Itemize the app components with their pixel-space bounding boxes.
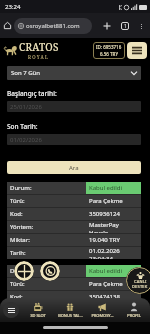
staticText: Türü:	[10, 280, 25, 288]
staticText: 350936124	[89, 210, 120, 218]
staticText: 01/02/2026	[10, 136, 42, 144]
button[interactable]: Miktar:	[7, 234, 141, 246]
button[interactable]: Add	[14, 261, 34, 281]
button[interactable]: 01/02/2026	[7, 134, 141, 145]
staticText: Başlangıç tarihi:	[7, 89, 57, 98]
button[interactable]: Türü:	[7, 195, 141, 207]
button[interactable]: Tarih:	[7, 247, 141, 259]
staticText: 350474138	[89, 293, 120, 301]
button[interactable]: BONUS TAL...	[54, 298, 86, 322]
staticText: Durum:	[10, 184, 32, 192]
staticText: Türü:	[10, 197, 25, 205]
staticText: Kod:	[10, 210, 23, 218]
button[interactable]: PROFIL	[118, 298, 150, 322]
staticText: Ara	[69, 164, 79, 172]
staticText: 6.56 TRY	[100, 51, 118, 57]
staticText: CANLI	[134, 279, 147, 284]
staticText: Miktar:	[10, 236, 30, 244]
staticText: 1	[124, 23, 127, 30]
button[interactable]: Home	[1, 19, 14, 32]
staticText: CRATOS	[19, 40, 59, 54]
button[interactable]: Durum:	[7, 182, 141, 194]
staticText: Kabul edildi	[89, 267, 122, 275]
button[interactable]: Ara	[7, 161, 141, 174]
staticText: PROFIL	[127, 313, 141, 318]
button[interactable]: Menu	[127, 42, 147, 59]
staticText: Tarih:	[10, 249, 26, 257]
staticText: PROMOSY...	[91, 313, 114, 318]
button[interactable]: Menu	[0, 298, 22, 322]
button[interactable]: PROMOSY...	[86, 298, 118, 322]
button[interactable]: More options	[134, 19, 148, 33]
staticText: MasterPay Havale	[89, 221, 138, 233]
button[interactable]: osroyalbet881.com	[14, 18, 92, 34]
staticText: DESTEK	[132, 284, 148, 289]
staticText: osroyalbet881.com	[26, 22, 80, 30]
button[interactable]: WhatsApp	[40, 261, 60, 281]
button[interactable]: Durum:	[7, 265, 141, 277]
staticText: 19.040 TRY	[89, 236, 120, 244]
button[interactable]: CRATOS	[3, 40, 59, 60]
staticText: 3D SLOT	[30, 313, 46, 318]
button[interactable]: Türü:	[7, 278, 141, 290]
button[interactable]: Kod:	[7, 208, 141, 220]
button[interactable]: 25/01/2026	[7, 101, 141, 112]
button[interactable]: Yöntem:	[7, 221, 141, 233]
staticText: Yöntem:	[10, 223, 34, 231]
staticText: Kabul edildi	[89, 184, 122, 192]
staticText: Kod:	[10, 293, 23, 301]
button[interactable]: Tabs	[118, 19, 132, 33]
button[interactable]: ID: 6953716	[93, 42, 125, 59]
button[interactable]: New tab	[100, 19, 114, 33]
button[interactable]: Kod:	[7, 291, 141, 303]
staticText: Durum:	[10, 267, 32, 275]
button[interactable]: Son 7 Gün	[7, 66, 141, 80]
button[interactable]: 3D SLOT	[22, 298, 54, 322]
staticText: ID: 6953716	[96, 44, 122, 50]
staticText: Para Çekme	[89, 197, 123, 205]
staticText: Son 7 Gün	[11, 69, 40, 77]
staticText: BONUS TAL...	[58, 313, 83, 318]
staticText: Para Çekme	[89, 280, 123, 288]
staticText: 23:24	[5, 3, 21, 11]
staticText: Son Tarih:	[7, 122, 38, 131]
staticText: ROYAL	[28, 54, 50, 60]
staticText: 01.02.2026 23:04:34	[89, 247, 138, 259]
staticText: 25/01/2026	[10, 103, 42, 111]
button[interactable]: CANLI	[126, 267, 150, 294]
